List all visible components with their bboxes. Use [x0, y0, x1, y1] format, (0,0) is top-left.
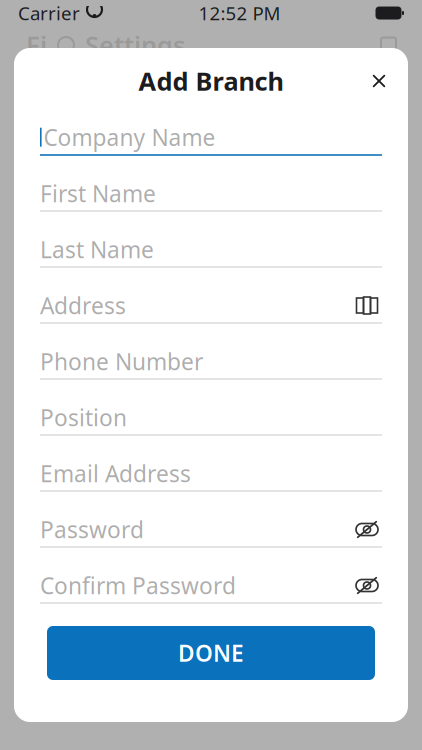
button[interactable]: First Name — [40, 166, 382, 222]
staticText: Add Branch — [138, 64, 283, 98]
button[interactable]: DONE — [47, 626, 375, 680]
staticText: Carrier — [18, 1, 80, 25]
button[interactable]: Email Address — [40, 446, 382, 502]
staticText: Address — [40, 290, 126, 320]
staticText: Settings — [85, 28, 185, 62]
button[interactable]: Confirm Password — [40, 558, 382, 614]
button[interactable]: Show password — [352, 572, 382, 598]
staticText: DONE — [178, 638, 244, 668]
staticText: Email Address — [40, 458, 191, 488]
button[interactable]: Last Name — [40, 222, 382, 278]
button[interactable]: Pick address on map — [352, 292, 382, 318]
button[interactable]: Show password — [352, 516, 382, 542]
staticText: Confirm Password — [40, 570, 236, 600]
staticText: First Name — [40, 178, 156, 208]
button[interactable]: Phone Number — [40, 334, 382, 390]
staticText: Company Name — [44, 122, 216, 152]
button[interactable]: Address — [40, 278, 382, 334]
button[interactable]: Close — [362, 64, 396, 98]
staticText: Fi — [26, 28, 47, 62]
staticText: Phone Number — [40, 346, 203, 376]
button[interactable]: Company Name — [40, 110, 382, 166]
staticText: Position — [40, 402, 127, 432]
staticText: 12:52 PM — [198, 1, 280, 25]
staticText: Password — [40, 514, 144, 544]
button[interactable]: Position — [40, 390, 382, 446]
button[interactable]: Password — [40, 502, 382, 558]
staticText: Last Name — [40, 234, 154, 264]
